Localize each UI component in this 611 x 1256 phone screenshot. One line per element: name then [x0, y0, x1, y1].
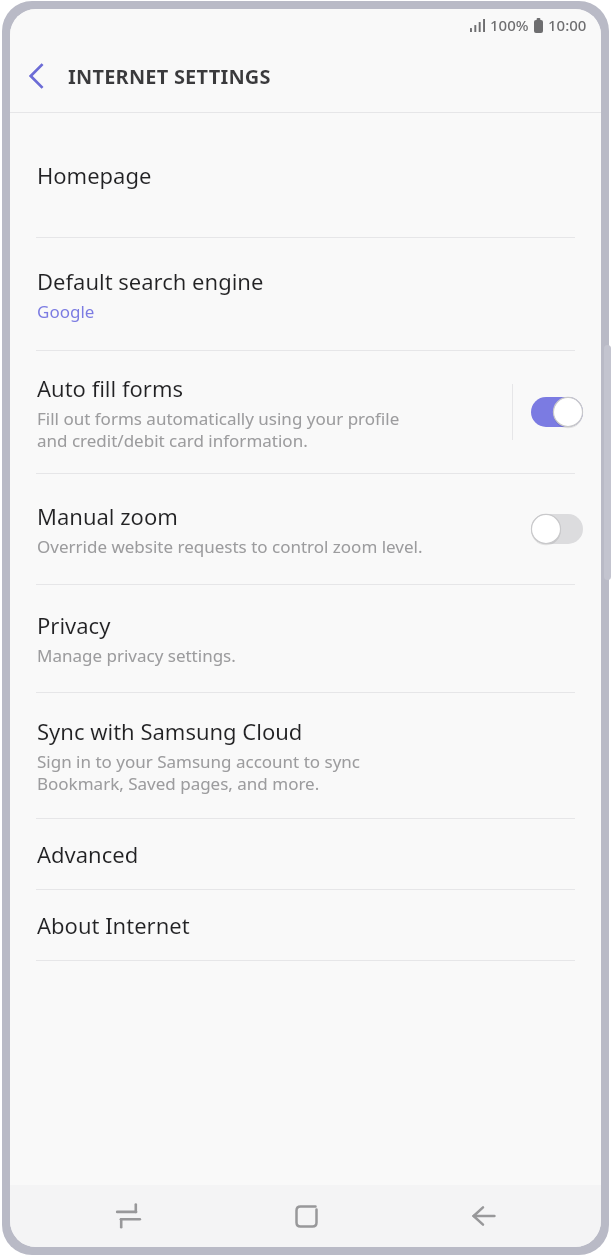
staticText: Sync with Samsung Cloud	[37, 716, 303, 746]
staticText: Privacy	[37, 610, 111, 640]
staticText: Override website requests to control zoo…	[37, 535, 423, 558]
button[interactable]: Back	[423, 1185, 543, 1247]
staticText: Default search engine	[37, 266, 264, 296]
button[interactable]: Manual zoom	[10, 474, 601, 584]
button[interactable]: About Internet	[10, 890, 601, 960]
staticText: Sign in to your Samsung account to sync …	[37, 750, 360, 795]
staticText: Manage privacy settings.	[37, 644, 236, 667]
button[interactable]: Navigate up	[10, 50, 62, 102]
button[interactable]: Manual zoom toggle	[512, 474, 601, 584]
button[interactable]: Auto fill forms	[10, 351, 601, 473]
staticText: About Internet	[37, 910, 190, 940]
staticText: Homepage	[37, 160, 152, 190]
staticText: INTERNET SETTINGS	[68, 63, 271, 90]
staticText: Manual zoom	[37, 501, 178, 531]
staticText: Fill out forms automatically using your …	[37, 407, 400, 452]
staticText: 10:00	[548, 15, 587, 35]
button[interactable]: Sync with Samsung Cloud	[10, 693, 601, 818]
button[interactable]: Auto fill forms toggle	[513, 351, 601, 473]
button[interactable]: Recents	[68, 1185, 188, 1247]
staticText: 100%	[490, 15, 529, 35]
staticText: Google	[37, 300, 95, 323]
button[interactable]: Home	[246, 1185, 366, 1247]
staticText: Auto fill forms	[37, 373, 184, 403]
button[interactable]: Privacy	[10, 585, 601, 692]
button[interactable]: Advanced	[10, 819, 601, 889]
button[interactable]: Homepage	[10, 113, 601, 237]
staticText: Advanced	[37, 839, 139, 869]
button[interactable]: Default search engine	[10, 238, 601, 350]
